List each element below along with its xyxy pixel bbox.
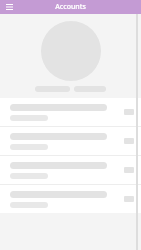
button[interactable] (0, 98, 141, 126)
button[interactable] (0, 185, 141, 213)
button[interactable] (0, 127, 141, 155)
button[interactable]: Profile photo (41, 21, 101, 81)
staticText: Accounts (55, 2, 86, 12)
button[interactable]: Open navigation menu (4, 2, 14, 12)
button[interactable] (0, 156, 141, 184)
